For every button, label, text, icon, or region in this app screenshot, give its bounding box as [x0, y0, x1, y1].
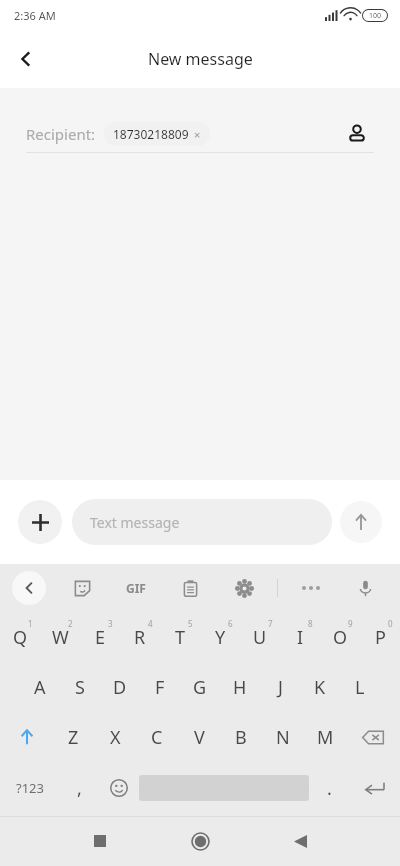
button[interactable]: W: [40, 612, 80, 662]
staticText: Z: [68, 725, 79, 750]
staticText: 3: [108, 618, 113, 629]
button[interactable]: O: [320, 612, 360, 662]
staticText: N: [276, 725, 290, 750]
staticText: P: [375, 625, 386, 650]
staticText: X: [110, 725, 121, 750]
staticText: GIF: [126, 580, 146, 596]
button[interactable]: Add attachment: [18, 500, 62, 544]
staticText: .: [327, 776, 332, 801]
staticText: T: [175, 625, 186, 650]
button[interactable]: C: [136, 712, 178, 762]
staticText: 9: [348, 618, 353, 629]
staticText: 0: [388, 618, 393, 629]
button[interactable]: Backspace: [346, 712, 400, 762]
button[interactable]: Recent apps: [76, 817, 124, 865]
button[interactable]: Back: [0, 33, 52, 85]
staticText: U: [253, 625, 267, 650]
button[interactable]: D: [100, 662, 140, 712]
button[interactable]: ,: [59, 762, 99, 814]
button[interactable]: Collapse toolbar: [12, 571, 46, 605]
staticText: A: [34, 675, 46, 700]
button[interactable]: .: [309, 762, 349, 814]
button[interactable]: Q: [0, 612, 40, 662]
button[interactable]: U: [240, 612, 280, 662]
button[interactable]: Emoji: [99, 762, 139, 814]
button[interactable]: B: [220, 712, 262, 762]
button[interactable]: Shift: [0, 712, 53, 762]
staticText: C: [151, 725, 163, 750]
staticText: 5: [188, 618, 193, 629]
button[interactable]: J: [260, 662, 300, 712]
staticText: 4: [148, 618, 153, 629]
staticText: L: [355, 675, 365, 700]
staticText: J: [278, 675, 283, 700]
staticText: Y: [215, 625, 226, 650]
button[interactable]: R: [120, 612, 160, 662]
staticText: E: [95, 625, 106, 650]
button[interactable]: Text message: [72, 499, 332, 545]
staticText: M: [317, 725, 334, 750]
button[interactable]: Choose contact: [340, 117, 374, 151]
staticText: S: [75, 675, 85, 700]
button[interactable]: E: [80, 612, 120, 662]
staticText: O: [333, 625, 348, 650]
button[interactable]: G: [180, 662, 220, 712]
button[interactable]: GIF: [119, 571, 153, 605]
staticText: B: [235, 725, 247, 750]
staticText: Text message: [90, 513, 180, 532]
button[interactable]: T: [160, 612, 200, 662]
staticText: 8: [308, 618, 313, 629]
button[interactable]: ?123: [0, 762, 59, 814]
button[interactable]: S: [60, 662, 100, 712]
button[interactable]: Settings: [227, 571, 261, 605]
staticText: ,: [77, 776, 82, 801]
staticText: H: [233, 675, 247, 700]
staticText: 1: [28, 618, 33, 629]
staticText: 18730218809: [113, 126, 189, 142]
button[interactable]: More options: [294, 571, 328, 605]
button[interactable]: P: [360, 612, 400, 662]
staticText: R: [134, 625, 146, 650]
staticText: ×: [194, 127, 201, 142]
button[interactable]: Voice input: [348, 571, 382, 605]
staticText: 7: [268, 618, 273, 629]
staticText: I: [297, 625, 304, 650]
button[interactable]: N: [262, 712, 304, 762]
staticText: G: [193, 675, 207, 700]
button[interactable]: I: [280, 612, 320, 662]
button[interactable]: 18730218809: [104, 122, 210, 146]
button[interactable]: Clipboard: [173, 571, 207, 605]
button[interactable]: Back: [276, 817, 324, 865]
staticText: 2: [68, 618, 73, 629]
button[interactable]: A: [20, 662, 60, 712]
staticText: 100: [369, 11, 382, 21]
staticText: Recipient:: [26, 124, 96, 144]
button[interactable]: Z: [53, 712, 94, 762]
button[interactable]: K: [300, 662, 340, 712]
staticText: ?123: [16, 779, 44, 797]
staticText: W: [52, 625, 69, 650]
button[interactable]: M: [304, 712, 346, 762]
button[interactable]: Enter: [349, 762, 400, 814]
button[interactable]: Home: [176, 817, 224, 865]
staticText: K: [314, 675, 326, 700]
staticText: F: [155, 675, 165, 700]
staticText: 6: [228, 618, 233, 629]
button[interactable]: H: [220, 662, 260, 712]
staticText: V: [194, 725, 205, 750]
button[interactable]: X: [94, 712, 136, 762]
button[interactable]: V: [178, 712, 220, 762]
staticText: New message: [148, 48, 253, 70]
staticText: 2:36 AM: [14, 8, 56, 23]
staticText: Q: [13, 625, 28, 650]
button[interactable]: Send: [340, 501, 382, 543]
button[interactable]: Y: [200, 612, 240, 662]
staticText: D: [113, 675, 127, 700]
button[interactable]: L: [340, 662, 380, 712]
button[interactable]: Stickers: [65, 571, 99, 605]
button[interactable]: F: [140, 662, 180, 712]
